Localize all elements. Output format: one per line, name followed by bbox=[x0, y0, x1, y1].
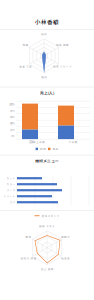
staticText: トリート bbox=[3, 194, 15, 198]
staticText: 提案力 bbox=[61, 235, 70, 239]
staticText: 売上 貢献 bbox=[41, 267, 54, 271]
staticText: 接客 スキル bbox=[39, 224, 55, 228]
staticText: 2024年上半期 bbox=[29, 140, 45, 144]
staticText: 接客 提案 bbox=[56, 43, 69, 47]
staticText: 清潔 丁寧 bbox=[19, 64, 32, 68]
staticText: 勤怠 bbox=[25, 235, 31, 239]
staticText: 小林香織 bbox=[35, 18, 59, 26]
staticText: 技術 bbox=[41, 32, 47, 36]
staticText: 担当スタッフ bbox=[41, 214, 59, 218]
staticText: カラー bbox=[6, 182, 15, 186]
staticText: パーマ bbox=[6, 188, 15, 192]
staticText: 20% bbox=[10, 128, 14, 132]
staticText: 指名 リピート bbox=[53, 64, 72, 68]
staticText: 新規 bbox=[40, 147, 46, 151]
staticText: 売上(人) bbox=[40, 90, 54, 96]
staticText: 施術メニュー bbox=[35, 158, 59, 164]
staticText: 80% bbox=[10, 109, 14, 113]
staticText: 指名率 bbox=[61, 256, 70, 260]
staticText: スパ bbox=[9, 200, 15, 204]
staticText: 40% bbox=[10, 121, 14, 125]
staticText: 販売 bbox=[41, 75, 47, 79]
staticText: 0% bbox=[11, 134, 14, 138]
staticText: 下半期 bbox=[68, 140, 77, 144]
staticText: 再来 bbox=[52, 147, 58, 151]
staticText: 100% bbox=[9, 102, 14, 106]
staticText: 知識 bbox=[22, 43, 28, 47]
staticText: 技術力 評価 bbox=[20, 256, 36, 260]
staticText: 60% bbox=[10, 115, 14, 119]
staticText: カット bbox=[6, 176, 15, 180]
